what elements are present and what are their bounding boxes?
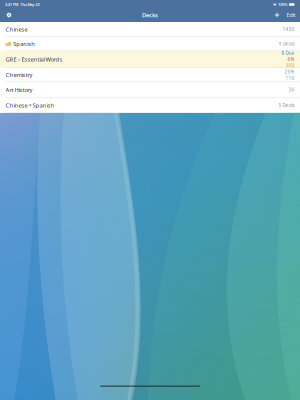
staticText: 100% (278, 2, 287, 7)
staticText: 8 Due (281, 50, 294, 56)
staticText: 1430 (282, 26, 294, 32)
staticText: 4 Decks (278, 41, 294, 47)
staticText: 300 (285, 62, 294, 68)
staticText: 5 Decks (278, 102, 294, 108)
staticText: Thu May 23 (20, 2, 39, 7)
staticText: Art History (5, 86, 32, 94)
staticText: 26% (284, 69, 294, 75)
button[interactable]: Chinese (0, 22, 300, 37)
button[interactable]: Edit (285, 8, 297, 21)
button[interactable]: New Deck (272, 8, 282, 21)
button[interactable]: Chinese + Spanish (0, 98, 300, 113)
staticText: 2:41 PM (5, 2, 18, 7)
staticText: 6% (287, 56, 294, 62)
staticText: Decks (142, 11, 158, 19)
button[interactable]: Spanish (0, 37, 300, 51)
staticText: 110 (285, 75, 294, 81)
button[interactable]: Art History (0, 82, 300, 98)
staticText: Chinese (5, 25, 27, 33)
button[interactable]: Settings (3, 8, 15, 21)
button[interactable]: Chemistry (0, 68, 300, 82)
staticText: GRE – Essential Words (5, 55, 62, 63)
staticText: Edit (286, 11, 295, 19)
staticText: Chemistry (5, 71, 32, 79)
staticText: 36 (288, 87, 294, 93)
button[interactable]: GRE – Essential Words (0, 51, 300, 68)
staticText: Spanish (13, 40, 35, 48)
staticText: Chinese + Spanish (5, 101, 54, 109)
